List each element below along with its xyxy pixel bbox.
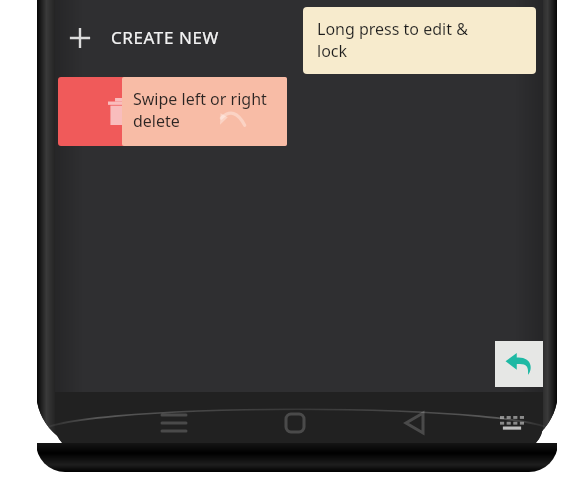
staticText: CREATE NEW [111,26,219,49]
staticText: Swipe left or right delete [133,88,267,132]
button[interactable] [58,77,287,146]
button[interactable]: Recent apps [153,402,195,444]
button[interactable]: CREATE NEW [55,10,285,66]
button[interactable]: Long press to edit & lock [303,7,536,74]
button[interactable]: Home [274,402,316,444]
button[interactable]: Undo [495,341,543,387]
button[interactable]: Switch keyboard [491,402,533,444]
button[interactable]: Back [393,402,435,444]
staticText: Long press to edit & lock [317,18,468,62]
button[interactable]: Swipe left or right delete [122,77,287,146]
